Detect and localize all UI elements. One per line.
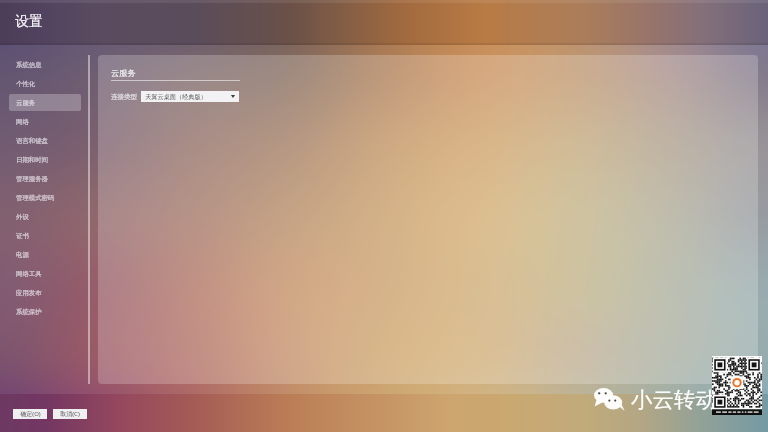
button[interactable]: 确定(O) [13,409,47,419]
button[interactable]: 网络 [9,113,81,130]
staticText: 网络工具 [16,270,42,278]
staticText: 应用发布 [16,289,42,297]
staticText: 连接类型 [111,93,137,101]
button[interactable]: 取消(C) [53,409,87,419]
staticText: 系统信息 [16,61,42,69]
button[interactable]: 系统保护 [9,303,81,320]
button[interactable]: 设置 [0,0,768,45]
staticText: 确定(O) [20,410,41,418]
staticText: 云服务 [16,99,36,107]
button[interactable]: 网络工具 [9,265,81,282]
button[interactable]: 云服务 [9,94,81,111]
staticText: 设置 [15,13,43,31]
button[interactable]: 证书 [9,227,81,244]
staticText: 日期和时间 [16,156,48,164]
staticText: 证书 [16,232,29,240]
staticText: 管理服务器 [16,175,48,183]
button[interactable]: 个性化 [9,75,81,92]
staticText: 取消(C) [60,410,80,418]
staticText: 语言和键盘 [16,137,48,145]
button[interactable]: 管理模式密码 [9,189,81,206]
staticText: 系统保护 [16,308,42,316]
button[interactable]: 电源 [9,246,81,263]
button[interactable]: 外设 [9,208,81,225]
button[interactable]: 语言和键盘 [9,132,81,149]
button[interactable]: 系统信息 [9,56,81,73]
staticText: 个性化 [16,80,36,88]
staticText: 天翼云桌面（经典版） [145,93,228,101]
staticText: 小云转动大云 [631,386,760,413]
staticText: 云服务 [111,68,136,78]
staticText: 管理模式密码 [16,194,55,202]
button[interactable]: 天翼云桌面（经典版） [141,91,239,102]
staticText: 外设 [16,213,29,221]
staticText: 网络 [16,118,29,126]
staticText: 电源 [16,251,29,259]
button[interactable]: 应用发布 [9,284,81,301]
button[interactable]: 管理服务器 [9,170,81,187]
other: Open connection type list [228,91,239,102]
other: Scan QR code [712,356,762,415]
button[interactable]: 日期和时间 [9,151,81,168]
